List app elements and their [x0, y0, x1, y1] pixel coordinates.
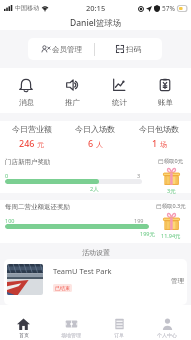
- staticText: 1: [152, 137, 158, 149]
- button[interactable]: 账单: [144, 68, 186, 113]
- staticText: 订单: [114, 332, 124, 338]
- staticText: 消息: [19, 98, 34, 107]
- button[interactable]: 会员管理: [28, 38, 94, 60]
- staticText: 199: [134, 217, 144, 224]
- staticText: 个人中心: [157, 332, 177, 338]
- staticText: 门店新用户奖励: [5, 158, 51, 166]
- staticText: 今日包场数: [139, 124, 179, 134]
- staticText: 管理: [171, 277, 184, 285]
- staticText: 人: [96, 140, 103, 149]
- button[interactable]: 已领取0.3元: [151, 202, 191, 240]
- staticText: 已领取0元: [158, 157, 184, 165]
- button[interactable]: 推广: [51, 68, 93, 113]
- staticText: 首页: [19, 332, 29, 338]
- staticText: 3元: [167, 187, 176, 195]
- staticText: 今日入场数: [75, 124, 115, 134]
- button[interactable]: 今日入场数: [63, 124, 127, 149]
- button[interactable]: 首页: [0, 305, 47, 340]
- staticText: 100: [5, 217, 15, 224]
- staticText: 扫码: [126, 45, 141, 54]
- button[interactable]: 已领取0元: [151, 157, 191, 195]
- staticText: 元: [37, 140, 44, 149]
- staticText: 会员管理: [52, 45, 82, 54]
- staticText: 每周二营业额返还奖励: [5, 203, 70, 211]
- staticText: 246: [19, 137, 35, 149]
- button[interactable]: TeamU Test Park: [4, 259, 187, 305]
- staticText: 6: [88, 137, 94, 149]
- button[interactable]: 消息: [5, 68, 47, 113]
- staticText: 0: [5, 172, 9, 179]
- staticText: 199元: [140, 230, 155, 238]
- button[interactable]: 订单: [95, 305, 143, 340]
- staticText: 活动设置: [82, 248, 110, 257]
- button[interactable]: 场地管理: [47, 305, 95, 340]
- staticText: 20:15: [86, 3, 106, 13]
- staticText: 2人: [90, 185, 99, 193]
- staticText: 3: [137, 172, 141, 179]
- staticText: 账单: [158, 98, 173, 107]
- staticText: 已结束: [55, 285, 70, 291]
- staticText: 统计: [112, 98, 127, 107]
- staticText: 场: [160, 140, 167, 149]
- staticText: 57%: [162, 4, 175, 13]
- button[interactable]: 今日包场数: [127, 124, 191, 149]
- staticText: Daniel篮球场: [70, 17, 122, 29]
- other: 已结束: [55, 285, 70, 291]
- staticText: 今日营业额: [12, 124, 52, 134]
- staticText: 中国移动: [15, 4, 39, 12]
- staticText: 11.94元: [161, 232, 181, 240]
- button[interactable]: 扫码: [95, 38, 162, 60]
- button[interactable]: 个人中心: [143, 305, 191, 340]
- staticText: 推广: [65, 98, 80, 107]
- button[interactable]: 今日营业额: [0, 124, 63, 149]
- staticText: 场地管理: [61, 332, 81, 338]
- staticText: TeamU Test Park: [53, 266, 112, 276]
- staticText: 已领取0.3元: [156, 202, 186, 210]
- button[interactable]: 统计: [98, 68, 140, 113]
